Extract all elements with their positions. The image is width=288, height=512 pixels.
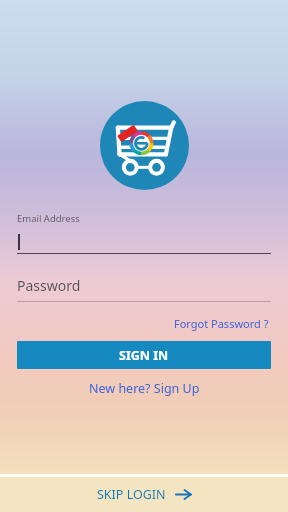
staticText: SIGN IN (119, 347, 169, 364)
staticText: Email Address (17, 212, 80, 225)
button[interactable]: SKIP LOGIN (0, 477, 288, 512)
button[interactable]: SIGN IN (17, 341, 271, 369)
staticText: Forgot Password ? (174, 316, 269, 331)
staticText: New here? Sign Up (89, 380, 200, 397)
other: Skip login (175, 486, 192, 503)
button[interactable]: New here? Sign Up (17, 380, 271, 397)
staticText: SKIP LOGIN (97, 486, 166, 503)
button[interactable]: Forgot Password ? (172, 315, 271, 332)
staticText: Password (17, 276, 81, 295)
